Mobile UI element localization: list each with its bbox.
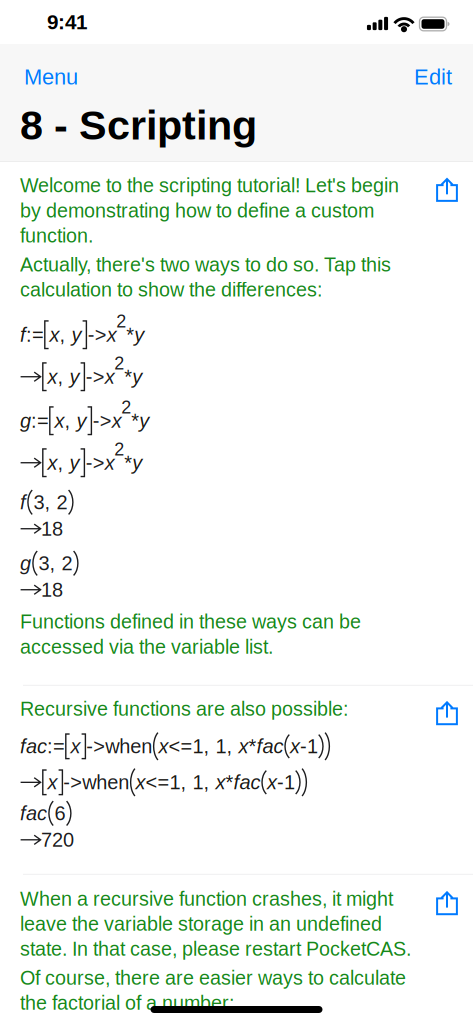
staticText: When a recursive function crashes, it mi… (20, 888, 411, 960)
staticText: x-1 (267, 771, 295, 793)
staticText: 2 (114, 353, 124, 373)
staticText: 2 (121, 397, 131, 417)
button[interactable]: Edit (398, 57, 473, 97)
staticText: -> (86, 366, 105, 388)
staticText: *y (124, 452, 142, 474)
staticText: -> (88, 324, 107, 346)
button[interactable]: Share (429, 888, 465, 919)
button[interactable]: Menu (0, 57, 94, 97)
staticText: -> (86, 452, 105, 474)
staticText: Menu (24, 65, 78, 89)
staticText: x-1 (290, 735, 318, 757)
staticText: ->when (86, 735, 152, 757)
staticText: 2 (116, 311, 126, 331)
button[interactable]: Share (429, 698, 465, 729)
staticText: x (107, 324, 117, 346)
staticText: x, y (55, 410, 87, 432)
staticText: x, y (48, 452, 80, 474)
staticText: 3, 2 (33, 491, 67, 513)
staticText: 720 (41, 829, 74, 851)
staticText: 18 (41, 518, 63, 540)
staticText: x<=1, 1, x*fac (159, 735, 284, 757)
staticText: f (20, 491, 26, 513)
staticText: 8 - Scripting (20, 102, 257, 148)
staticText: x, y (48, 366, 80, 388)
staticText: Recursive functions are also possible: (20, 698, 348, 720)
staticText: x, y (50, 324, 82, 346)
staticText: x (105, 366, 115, 388)
staticText: 18 (41, 579, 63, 601)
staticText: -> (93, 410, 112, 432)
staticText: ->when (63, 771, 129, 793)
staticText: *y (124, 366, 142, 388)
staticText: Edit (414, 65, 452, 89)
staticText: x (48, 771, 58, 793)
staticText: Actually, there's two ways to do so. Tap… (20, 254, 391, 301)
staticText: Welcome to the scripting tutorial! Let's… (20, 174, 399, 247)
staticText: x (71, 735, 81, 757)
staticText: f:= (20, 324, 44, 346)
staticText: 2 (114, 439, 124, 459)
staticText: fac (20, 802, 47, 824)
staticText: fac:= (20, 735, 65, 757)
staticText: 3, 2 (38, 552, 72, 574)
staticText: Functions defined in these ways can be a… (20, 611, 361, 658)
staticText: x<=1, 1, x*fac (136, 771, 261, 793)
staticText: Of course, there are easier ways to calc… (20, 967, 406, 1014)
button[interactable]: Share (429, 174, 465, 205)
staticText: *y (131, 410, 149, 432)
staticText: x (112, 410, 122, 432)
staticText: 6 (54, 802, 65, 824)
staticText: x (105, 452, 115, 474)
staticText: g:= (20, 410, 49, 432)
staticText: g (20, 552, 31, 574)
staticText: *y (126, 324, 144, 346)
staticText: 9:41 (47, 10, 87, 34)
